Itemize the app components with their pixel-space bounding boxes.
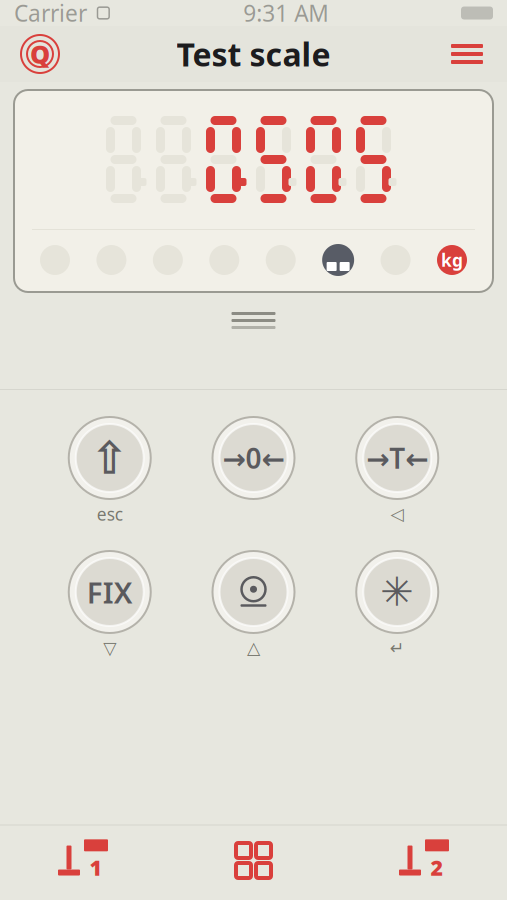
staticText: →T← — [366, 439, 428, 477]
button[interactable]: Print — [209, 548, 297, 636]
staticText: ▽ — [103, 638, 116, 658]
staticText: ✳ — [380, 569, 414, 615]
staticText: esc — [97, 502, 123, 525]
staticText: kg — [441, 248, 463, 271]
staticText: 2 — [430, 853, 443, 882]
button[interactable]: Zero — [209, 414, 297, 502]
button[interactable]: Logo — [14, 28, 66, 80]
staticText: 9:31 AM — [243, 0, 329, 28]
button[interactable]: Apps — [188, 825, 318, 895]
staticText: 1 — [89, 853, 102, 882]
button[interactable]: Fix — [66, 548, 154, 636]
staticText: △ — [247, 638, 260, 658]
button[interactable]: Scale 2 — [359, 825, 489, 895]
button[interactable]: Escape — [66, 414, 154, 502]
staticText: FIX — [87, 572, 133, 611]
button[interactable]: Menu — [441, 28, 493, 80]
staticText: ⇧ — [91, 432, 129, 484]
button[interactable]: Scale 1 — [18, 825, 148, 895]
button[interactable]: Tare — [353, 414, 441, 502]
staticText: →0← — [222, 439, 284, 477]
staticText: ↵ — [390, 638, 405, 658]
staticText: Carrier — [14, 0, 87, 28]
button[interactable]: Enter — [353, 548, 441, 636]
staticText: Q — [30, 37, 50, 71]
staticText: ◁ — [391, 504, 404, 524]
staticText: Test scale — [176, 33, 330, 75]
